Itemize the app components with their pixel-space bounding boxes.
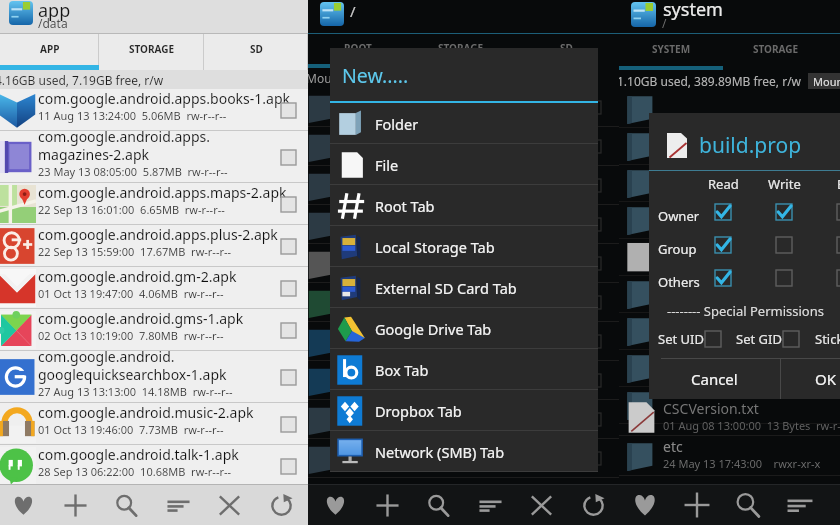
- staticText: 11 Aug 13 13:24:00 5.06MB rw-r--r--: [38, 108, 227, 123]
- staticText: 01 Oct 13 19:46:00 7.73MB rw-r--r--: [38, 422, 224, 437]
- button[interactable]: External SD Card Tab: [330, 267, 598, 308]
- button[interactable]: STORAGE: [99, 34, 204, 70]
- button[interactable]: STORAGE: [723, 34, 828, 70]
- button[interactable]: OK: [781, 359, 840, 399]
- staticText: OK: [815, 369, 837, 389]
- button[interactable]: [776, 270, 792, 286]
- staticText: 01 Aug 08 13:00:00 13 Bytes rw-r--r--: [663, 418, 840, 433]
- button[interactable]: [837, 237, 840, 253]
- button[interactable]: com.google.android.gm-2.apk: [0, 267, 308, 309]
- button[interactable]: Close: [203, 485, 255, 525]
- button[interactable]: Mount: [808, 73, 840, 89]
- button[interactable]: Favorites: [619, 485, 671, 525]
- staticText: Dropbox Tab: [375, 401, 462, 421]
- staticText: Sticky: [815, 330, 840, 348]
- staticText: Set GID: [736, 330, 782, 348]
- button[interactable]: com.google.android. googlequicksearchbox…: [0, 351, 308, 403]
- staticText: SYSTEM: [652, 42, 691, 56]
- button[interactable]: Refresh: [255, 485, 307, 525]
- button[interactable]: com.google.android.apps.books-1.apk: [0, 89, 308, 131]
- button[interactable]: Box Tab: [330, 349, 598, 390]
- staticText: SD: [250, 42, 263, 56]
- button[interactable]: Favorites: [309, 485, 361, 525]
- button[interactable]: Favorites: [0, 485, 49, 525]
- staticText: CSCVersion.txt: [663, 399, 759, 418]
- staticText: 23 May 13 08:05:00 5.87MB rw-r--r--: [38, 164, 228, 179]
- staticText: ROOT: [344, 41, 372, 55]
- button[interactable]: [783, 331, 799, 347]
- button[interactable]: New: [49, 485, 101, 525]
- button[interactable]: Refresh: [567, 485, 619, 525]
- button[interactable]: STORAGE: [408, 34, 513, 68]
- button[interactable]: [837, 270, 840, 286]
- button[interactable]: Folder: [330, 103, 598, 144]
- button[interactable]: SYSTEM: [619, 34, 723, 70]
- button[interactable]: Network (SMB) Tab: [330, 431, 598, 472]
- staticText: app: [38, 0, 71, 23]
- staticText: Others: [658, 273, 700, 291]
- staticText: system: [663, 0, 723, 22]
- button[interactable]: ROOT: [308, 34, 408, 68]
- staticText: 4.16GB used, 7.19GB free, r/w: [0, 72, 164, 88]
- button[interactable]: com.google.android.music-2.apk: [0, 403, 308, 445]
- staticText: Cancel: [691, 369, 738, 389]
- staticText: 22 Sep 13 16:01:00 6.65MB rw-r--r--: [38, 202, 225, 217]
- button[interactable]: Search: [412, 485, 464, 525]
- staticText: Owner: [658, 207, 700, 225]
- button[interactable]: [776, 237, 792, 253]
- button[interactable]: Sort: [464, 485, 516, 525]
- button[interactable]: New: [361, 485, 413, 525]
- button[interactable]: APP: [0, 34, 99, 70]
- staticText: Box Tab: [375, 360, 429, 380]
- staticText: 02 Oct 13 10:19:00 7.80MB rw-r--r--: [38, 328, 224, 343]
- staticText: build.prop: [699, 131, 802, 160]
- button[interactable]: File: [330, 144, 598, 185]
- button[interactable]: SD: [513, 34, 619, 68]
- button[interactable]: Sort: [152, 485, 204, 525]
- staticText: Network (SMB) Tab: [375, 442, 505, 462]
- button[interactable]: Search: [722, 485, 774, 525]
- button[interactable]: New: [671, 485, 723, 525]
- staticText: -------- Special Permissions: [667, 302, 824, 320]
- button[interactable]: [776, 204, 792, 220]
- staticText: etc: [663, 437, 683, 456]
- staticText: Group: [658, 240, 697, 258]
- button[interactable]: [837, 204, 840, 220]
- staticText: com.google.android.music-2.apk: [38, 403, 254, 422]
- staticText: com.google.android.apps.books-1.apk: [38, 89, 290, 108]
- button[interactable]: Dropbox Tab: [330, 390, 598, 431]
- staticText: com.google.android.apps.plus-2.apk: [38, 225, 278, 244]
- button[interactable]: Cancel: [649, 359, 780, 399]
- staticText: com.google.android.gms-1.apk: [38, 309, 244, 328]
- staticText: com.google.android. googlequicksearchbox…: [38, 347, 227, 384]
- button[interactable]: Root Tab: [330, 185, 598, 226]
- staticText: /: [662, 15, 667, 31]
- button[interactable]: Local Storage Tab: [330, 226, 598, 267]
- button[interactable]: Google Drive Tab: [330, 308, 598, 349]
- staticText: /data: [38, 15, 68, 31]
- button[interactable]: com.google.android.talk-1.apk: [0, 445, 308, 487]
- button[interactable]: Search: [100, 485, 152, 525]
- button[interactable]: [715, 237, 731, 253]
- staticText: com.google.android.apps.maps-2.apk: [38, 183, 287, 202]
- button[interactable]: SD: [204, 34, 308, 70]
- staticText: Read: [708, 175, 739, 193]
- staticText: /: [350, 1, 356, 21]
- staticText: Root Tab: [375, 196, 435, 216]
- button[interactable]: [715, 204, 731, 220]
- staticText: 01 Oct 13 19:47:00 4.06MB rw-r--r--: [38, 286, 224, 301]
- button[interactable]: Close: [515, 485, 567, 525]
- button[interactable]: com.google.android.apps.plus-2.apk: [0, 225, 308, 267]
- button[interactable]: com.google.android.gms-1.apk: [0, 309, 308, 351]
- button[interactable]: Sort: [774, 485, 826, 525]
- button[interactable]: com.google.android.apps.maps-2.apk: [0, 183, 308, 225]
- staticText: SD: [560, 41, 573, 55]
- button[interactable]: [705, 331, 721, 347]
- staticText: 27 Aug 13 13:13:00 14.18MB rw-r--r--: [38, 384, 233, 399]
- staticText: Google Drive Tab: [375, 319, 492, 339]
- button[interactable]: com.google.android.apps. magazines-2.apk: [0, 131, 308, 183]
- button[interactable]: [715, 270, 731, 286]
- staticText: STORAGE: [129, 42, 175, 56]
- staticText: com.google.android.gm-2.apk: [38, 267, 237, 286]
